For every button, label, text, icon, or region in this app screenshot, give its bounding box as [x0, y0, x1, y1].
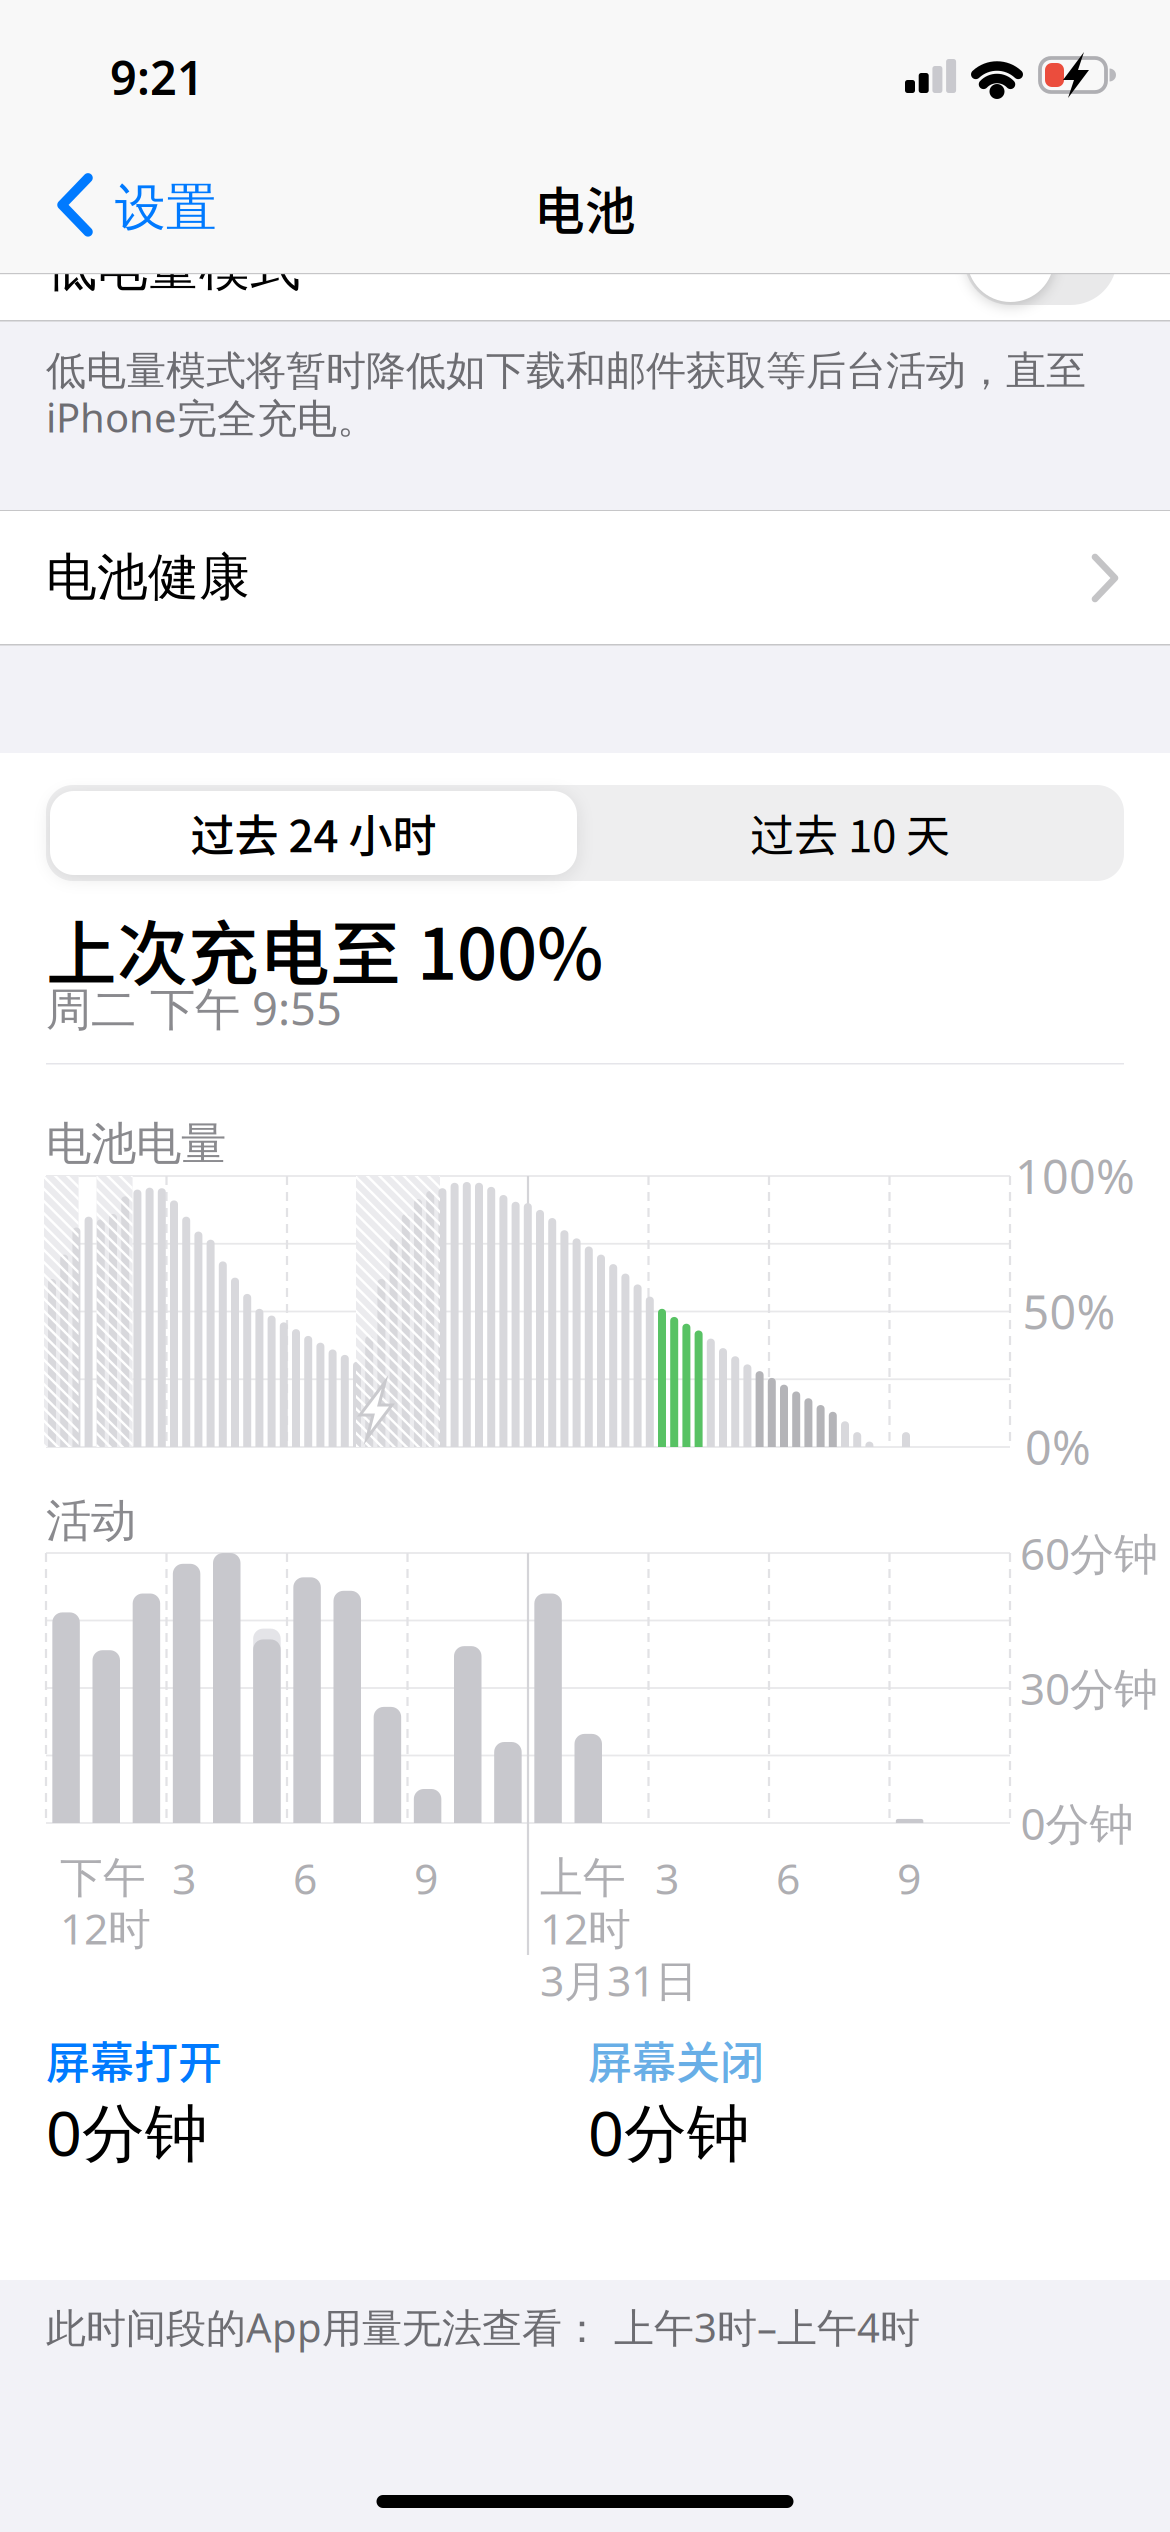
- staticText: 3: [655, 1850, 679, 1906]
- staticText: 12时: [60, 1900, 151, 1956]
- staticText: 此时间段的App用量无法查看： 上午3时–上午4时: [46, 2300, 920, 2353]
- staticText: 0分钟: [588, 2090, 750, 2173]
- staticText: iPhone完全充电。: [46, 390, 377, 444]
- staticText: 9: [897, 1850, 921, 1906]
- staticText: 9:21: [110, 46, 204, 108]
- staticText: 3月31日: [540, 1952, 698, 2008]
- staticText: 低电量模式: [46, 237, 301, 299]
- staticText: 0分钟: [46, 2090, 208, 2173]
- staticText: 50%: [1022, 1280, 1115, 1342]
- button[interactable]: 电池健康: [0, 511, 1170, 644]
- staticText: 9: [414, 1850, 438, 1906]
- staticText: 上午: [540, 1852, 626, 1904]
- button[interactable]: 设置: [33, 179, 193, 237]
- staticText: 过去 10 天: [750, 801, 950, 865]
- staticText: 30分钟: [1020, 1659, 1158, 1717]
- button[interactable]: 过去 10 天: [600, 791, 1100, 875]
- staticText: 60分钟: [1020, 1524, 1158, 1582]
- staticText: 过去 24 小时: [190, 801, 436, 865]
- staticText: 电池: [534, 171, 636, 245]
- staticText: 0%: [1025, 1416, 1091, 1478]
- staticText: 0分钟: [1020, 1794, 1133, 1852]
- staticText: 周二 下午 9:55: [46, 978, 342, 1038]
- staticText: 6: [293, 1850, 317, 1906]
- staticText: 12时: [540, 1900, 631, 1956]
- staticText: 100%: [1015, 1145, 1135, 1207]
- button[interactable]: 低电量模式: [964, 212, 1117, 305]
- staticText: 电池健康: [46, 546, 250, 609]
- staticText: 低电量模式将暂时降低如下载和邮件获取等后台活动，直至: [46, 346, 1086, 395]
- staticText: 下午: [60, 1852, 146, 1904]
- button[interactable]: 过去 24 小时: [50, 791, 577, 875]
- staticText: 屏幕关闭: [588, 2028, 764, 2092]
- staticText: 6: [776, 1850, 800, 1906]
- button[interactable]: 屏幕关闭: [588, 2028, 1008, 2158]
- button[interactable]: 屏幕打开: [46, 2028, 466, 2158]
- staticText: 电池电量: [46, 1116, 226, 1172]
- staticText: 设置: [115, 177, 217, 239]
- staticText: 活动: [46, 1493, 136, 1549]
- staticText: 屏幕打开: [46, 2028, 222, 2092]
- staticText: 上次充电至 100%: [46, 898, 603, 1000]
- staticText: 3: [172, 1850, 196, 1906]
